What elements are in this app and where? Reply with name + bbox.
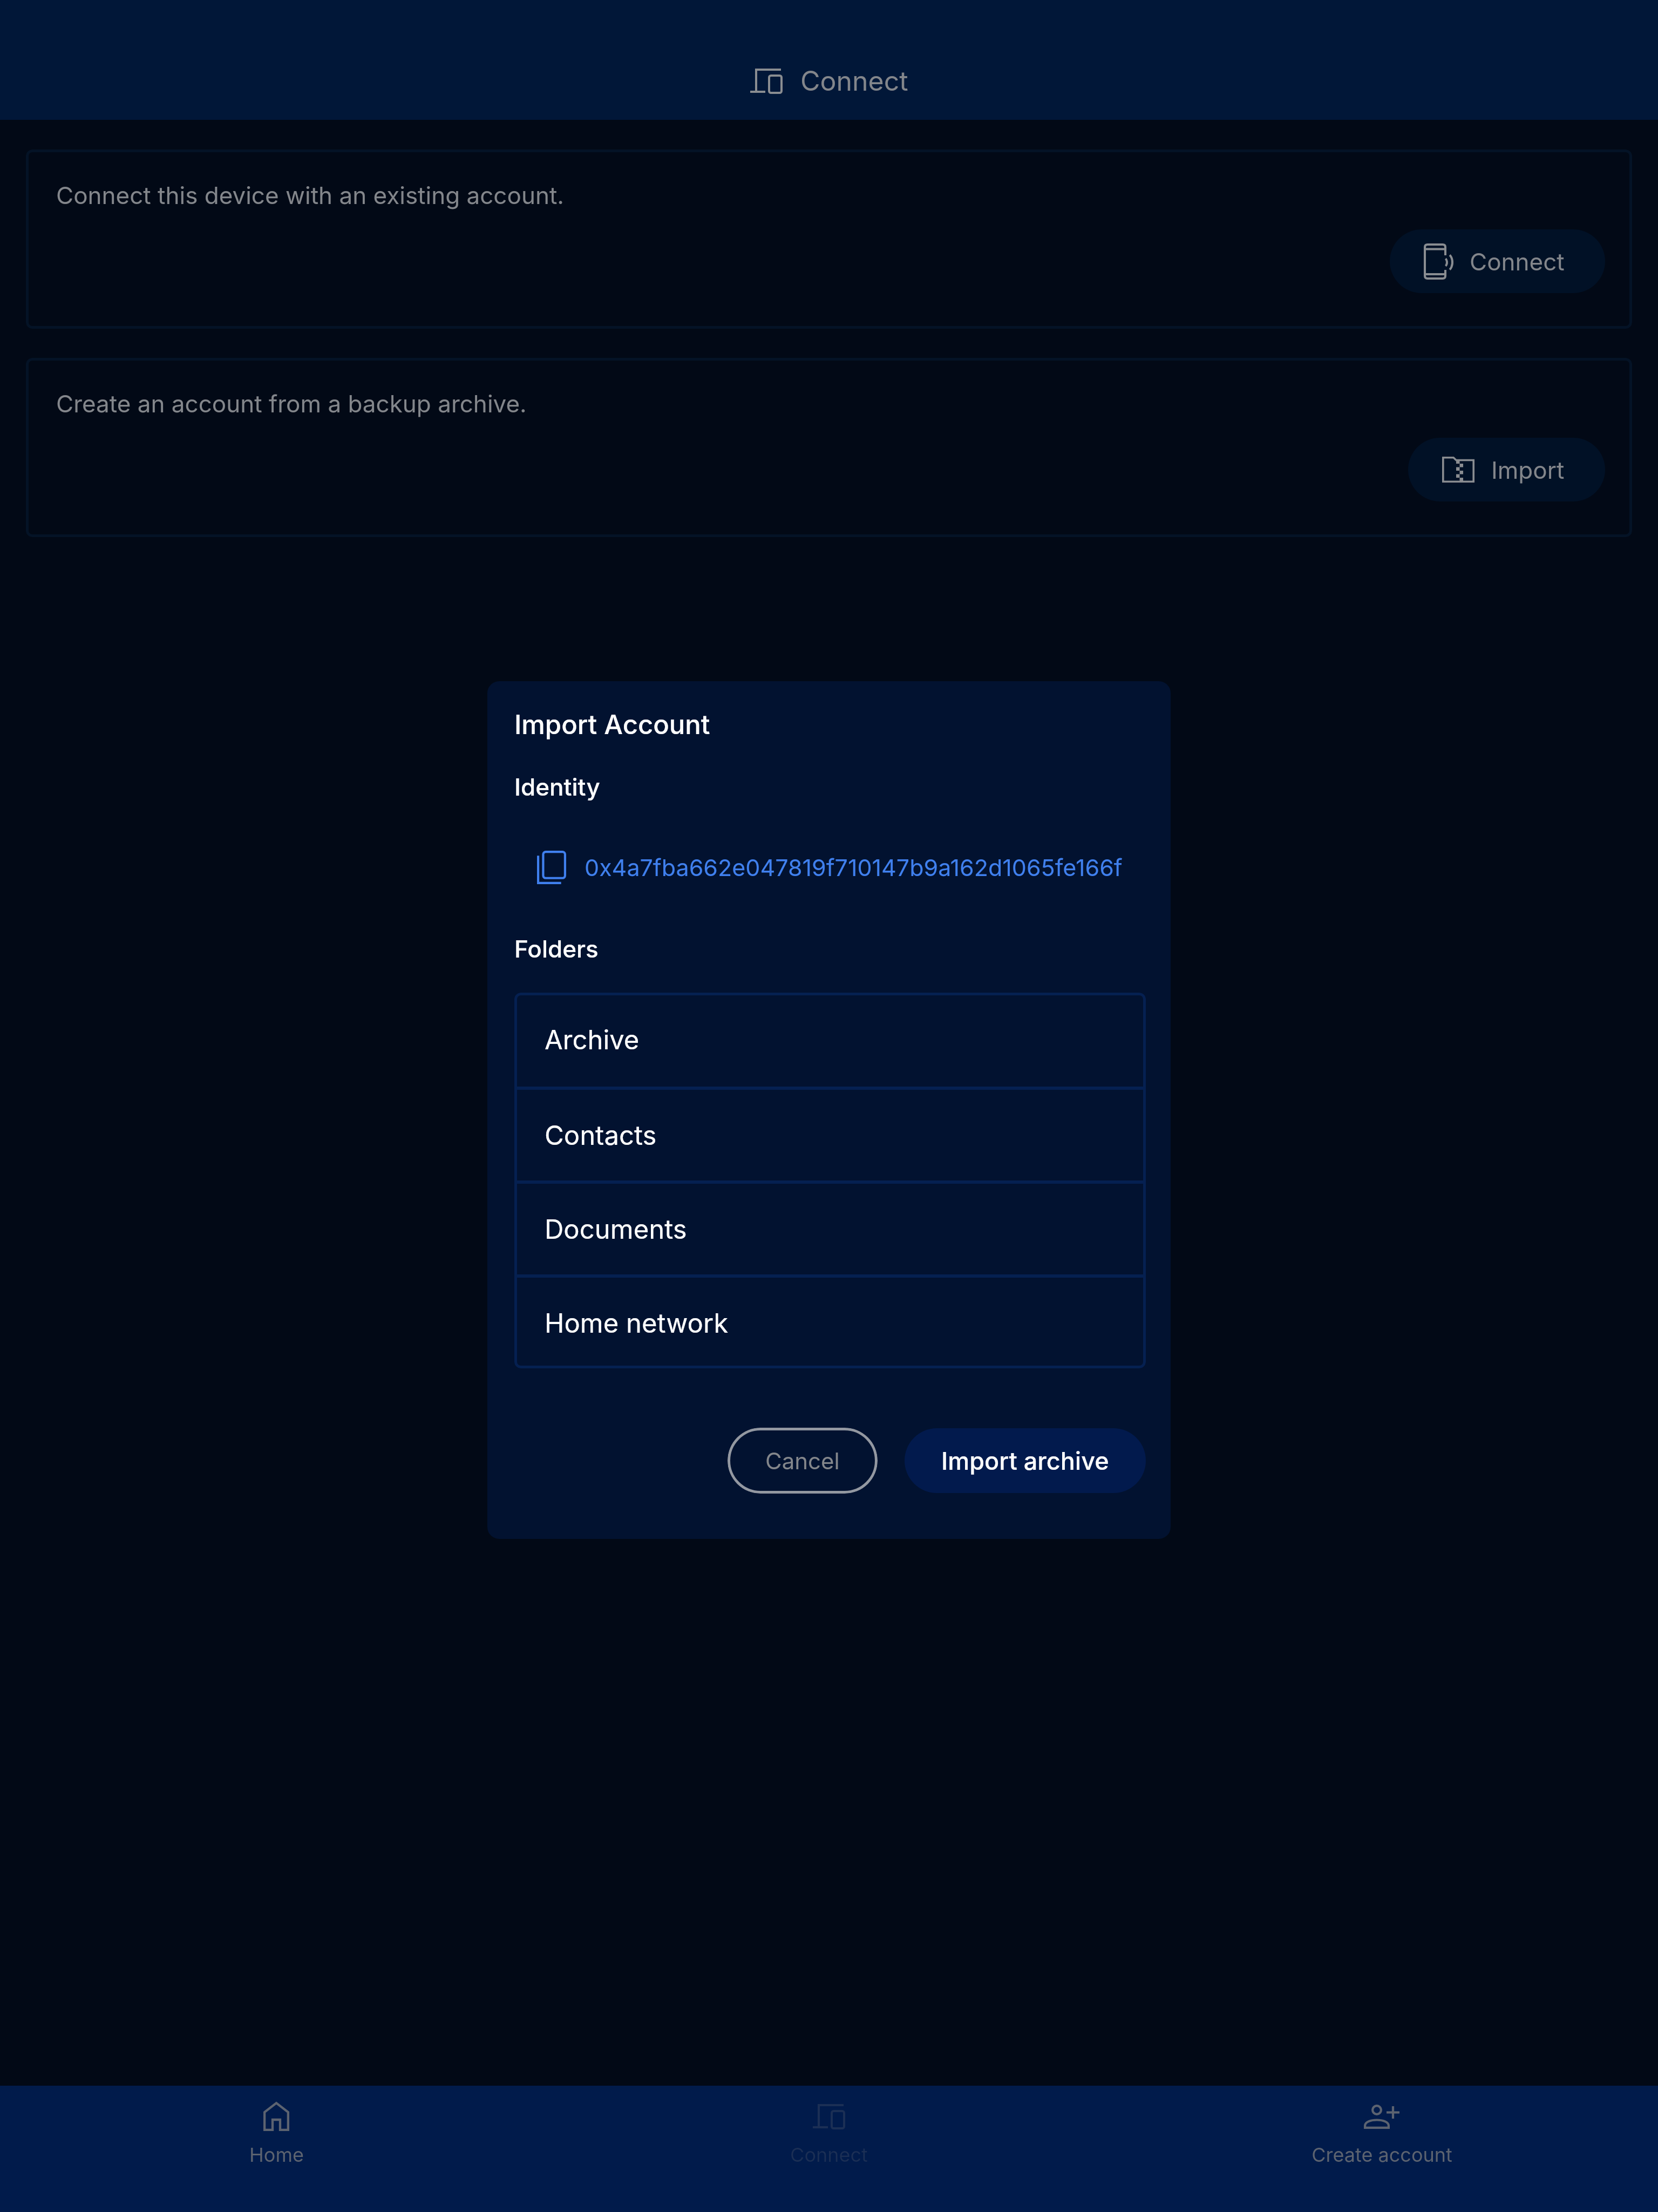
staticText: Connect [800, 65, 908, 97]
button[interactable]: Import archive [905, 1428, 1146, 1493]
staticText: Home [249, 2143, 304, 2167]
staticText: Home network [545, 1307, 729, 1339]
button[interactable]: Home network [514, 1278, 1146, 1368]
staticText: Create an account from a backup archive. [56, 389, 527, 418]
staticText: Cancel [765, 1447, 840, 1475]
button[interactable]: Import [1408, 438, 1605, 501]
button[interactable]: 0x4a7fba662e047819f710147b9a162d1065fe16… [537, 851, 1123, 884]
staticText: Create account [1312, 2143, 1452, 2167]
staticText: Connect [1470, 247, 1565, 276]
staticText: Documents [545, 1213, 687, 1245]
button[interactable]: Home [0, 2086, 553, 2167]
button[interactable]: Cancel [728, 1428, 878, 1494]
staticText: Folders [514, 934, 599, 963]
button[interactable]: Create account [1105, 2086, 1658, 2167]
staticText: Import [1491, 456, 1565, 484]
staticText: Import archive [941, 1446, 1109, 1475]
staticText: Connect this device with an existing acc… [56, 181, 564, 209]
button[interactable]: Documents [514, 1184, 1146, 1274]
staticText: Contacts [545, 1119, 657, 1151]
staticText: Archive [545, 1024, 640, 1056]
staticText: Connect [790, 2143, 868, 2167]
staticText: Identity [514, 772, 600, 801]
button[interactable]: Connect [1390, 229, 1605, 293]
staticText: Import Account [514, 709, 710, 741]
staticText: 0x4a7fba662e047819f710147b9a162d1065fe16… [585, 853, 1123, 881]
button[interactable]: Archive [514, 993, 1146, 1087]
button[interactable]: Contacts [514, 1090, 1146, 1180]
